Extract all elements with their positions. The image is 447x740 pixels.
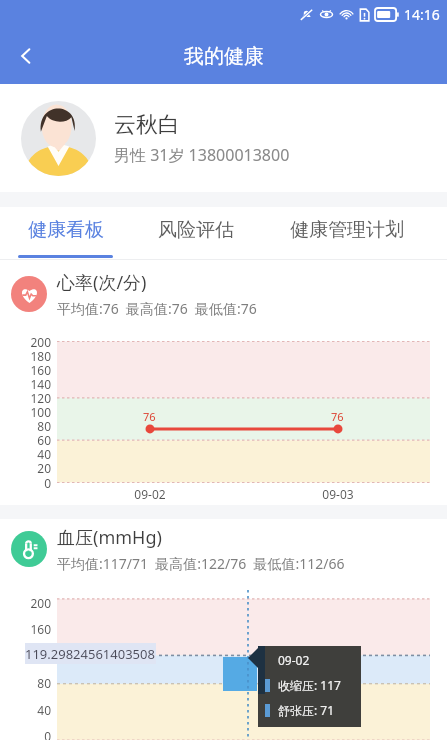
staticText: 200 xyxy=(0,595,51,611)
staticText: 男性 31岁 13800013800 xyxy=(114,144,290,166)
staticText: 心率(次/分) xyxy=(57,270,147,295)
staticText: 76 xyxy=(143,409,156,424)
staticText: 0 xyxy=(0,728,51,740)
staticText: 09-02 xyxy=(0,486,300,502)
staticText: 76 xyxy=(331,409,344,424)
button[interactable]: 健康看板 xyxy=(0,207,131,260)
staticText: 平均值:76 最高值:76 最低值:76 xyxy=(57,299,257,318)
button[interactable]: 健康管理计划 xyxy=(261,207,432,260)
staticText: 180 xyxy=(0,348,51,364)
staticText: 200 xyxy=(0,334,51,350)
staticText: 云秋白 xyxy=(114,111,180,139)
staticText: 160 xyxy=(0,362,51,378)
staticText: 40 xyxy=(0,702,51,718)
staticText: 120 xyxy=(0,390,51,406)
staticText: 我的健康 xyxy=(184,44,264,69)
staticText: 健康看板 xyxy=(28,218,104,242)
staticText: 140 xyxy=(0,376,51,392)
staticText: 09-02 xyxy=(278,652,310,668)
button[interactable]: 风险评估 xyxy=(131,207,261,260)
staticText: 0 xyxy=(0,475,51,491)
staticText: 血压(mmHg) xyxy=(57,525,162,550)
staticText: 40 xyxy=(0,446,51,462)
staticText: 80 xyxy=(0,418,51,434)
staticText: 平均值:117/71 最高值:122/76 最低值:112/66 xyxy=(57,554,345,573)
staticText: 09-03 xyxy=(188,486,447,502)
staticText: 风险评估 xyxy=(158,218,234,242)
staticText: 60 xyxy=(0,432,51,448)
staticText: 收缩压: 117 xyxy=(278,677,341,693)
staticText: 100 xyxy=(0,404,51,420)
staticText: 160 xyxy=(0,621,51,637)
staticText: 20 xyxy=(0,460,51,476)
staticText: 健康管理计划 xyxy=(290,218,404,242)
staticText: 舒张压: 71 xyxy=(278,702,335,718)
button[interactable]: Back xyxy=(6,36,46,76)
staticText: 119.29824561403508 xyxy=(25,645,155,663)
staticText: 14:16 xyxy=(404,5,440,24)
staticText: 80 xyxy=(0,675,51,691)
button[interactable]: 云秋白 xyxy=(0,84,447,192)
